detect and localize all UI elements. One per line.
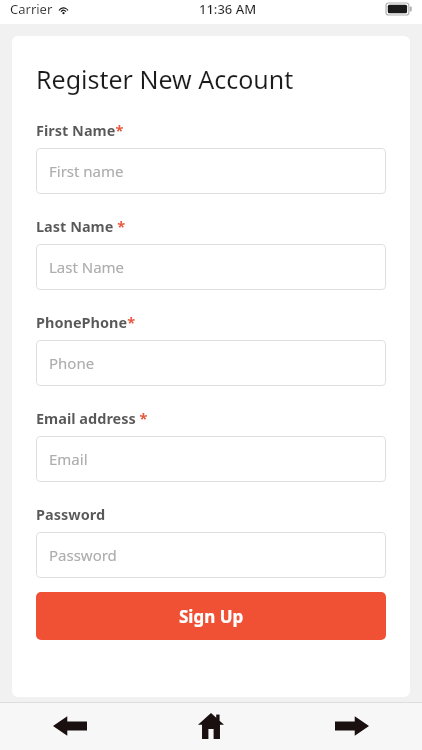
button[interactable]: Password	[36, 532, 386, 578]
button[interactable]: Back	[0, 702, 140, 750]
button[interactable]: Forward	[281, 702, 422, 750]
button[interactable]: Phone	[36, 340, 386, 386]
staticText: Last Name *	[36, 216, 126, 236]
staticText: Email address *	[36, 408, 148, 428]
staticText: Password	[49, 545, 117, 565]
button[interactable]: Last Name	[36, 244, 386, 290]
staticText: Carrier	[10, 0, 53, 18]
staticText: Sign Up	[179, 605, 244, 628]
button[interactable]: Home	[140, 702, 281, 750]
staticText: First name	[49, 161, 124, 181]
staticText: PhonePhone*	[36, 312, 136, 332]
staticText: Email	[49, 449, 88, 469]
button[interactable]: Email	[36, 436, 386, 482]
staticText: 11:36 AM	[199, 0, 257, 18]
staticText: First Name*	[36, 120, 124, 140]
staticText: Register New Account	[36, 62, 294, 96]
button[interactable]: First name	[36, 148, 386, 194]
staticText: Password	[36, 504, 106, 524]
staticText: Phone	[49, 353, 95, 373]
button[interactable]: Sign Up	[36, 592, 386, 640]
staticText: Last Name	[49, 257, 125, 277]
